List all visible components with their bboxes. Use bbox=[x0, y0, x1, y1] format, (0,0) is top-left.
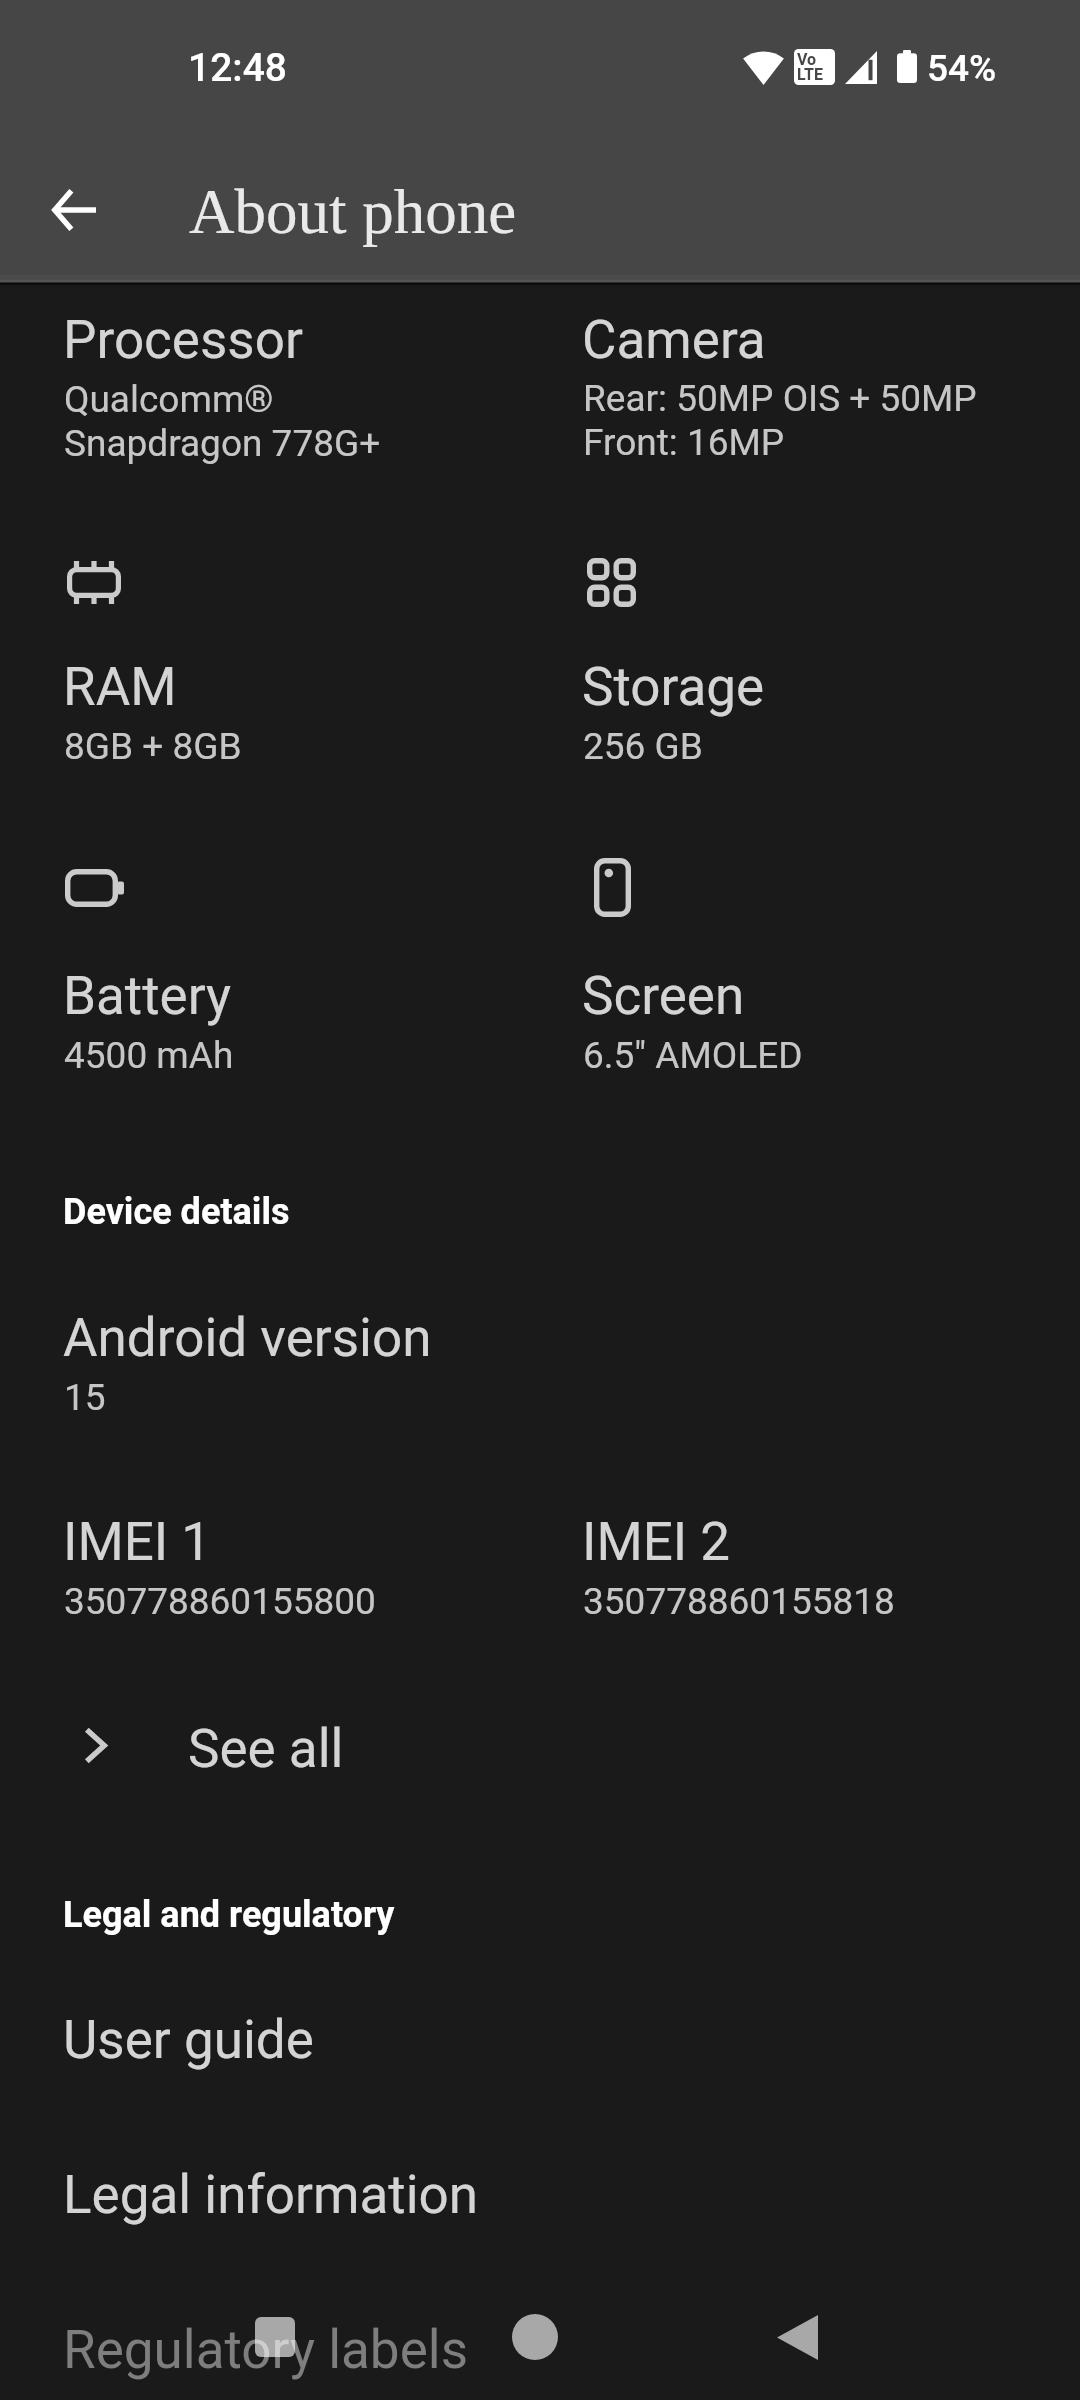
staticText: 6.5" AMOLED bbox=[583, 1034, 803, 1077]
button[interactable] bbox=[30, 1290, 520, 1440]
staticText: Android version bbox=[63, 1307, 432, 1369]
button[interactable] bbox=[30, 296, 520, 496]
button[interactable] bbox=[0, 1691, 1080, 1801]
staticText: Legal and regulatory bbox=[63, 1894, 395, 1936]
staticText: RAM bbox=[63, 656, 177, 718]
button[interactable] bbox=[30, 846, 520, 1088]
staticText: 350778860155800 bbox=[64, 1580, 376, 1623]
staticText: 4500 mAh bbox=[64, 1034, 234, 1077]
button[interactable]: Back bbox=[30, 166, 118, 254]
staticText: Legal information bbox=[63, 2164, 479, 2226]
staticText: Camera bbox=[582, 309, 766, 371]
button[interactable] bbox=[550, 846, 1050, 1088]
staticText: User guide bbox=[63, 2009, 314, 2071]
button[interactable] bbox=[30, 1496, 520, 1646]
staticText: IMEI 1 bbox=[63, 1511, 212, 1573]
staticText: See all bbox=[188, 1718, 344, 1780]
staticText: About phone bbox=[189, 177, 517, 247]
staticText: Rear: 50MP OIS + 50MP bbox=[583, 377, 977, 420]
button[interactable] bbox=[550, 1496, 1050, 1646]
staticText: 54% bbox=[927, 47, 997, 90]
staticText: Processor bbox=[63, 309, 303, 371]
staticText: 12:48 bbox=[188, 45, 288, 91]
staticText: Storage bbox=[582, 656, 765, 718]
staticText: IMEI 2 bbox=[582, 1511, 731, 1573]
staticText: LTE bbox=[797, 65, 823, 84]
button[interactable]: Back bbox=[707, 2267, 887, 2400]
staticText: Vo bbox=[797, 50, 817, 69]
staticText: Device details bbox=[63, 1191, 290, 1233]
staticText: Qualcomm® bbox=[64, 378, 274, 421]
button[interactable] bbox=[550, 540, 1050, 780]
staticText: Battery bbox=[63, 965, 232, 1027]
button[interactable]: Regulatory labels bbox=[0, 2290, 1080, 2400]
staticText: 350778860155818 bbox=[583, 1580, 895, 1623]
staticText: Front: 16MP bbox=[583, 421, 785, 464]
staticText: 8GB + 8GB bbox=[64, 725, 242, 768]
button[interactable] bbox=[550, 296, 1050, 496]
staticText: Regulatory labels bbox=[63, 2319, 468, 2381]
button[interactable]: User guide bbox=[0, 1980, 1080, 2090]
staticText: Screen bbox=[582, 965, 745, 1027]
button[interactable]: Legal information bbox=[0, 2135, 1080, 2245]
staticText: 15 bbox=[64, 1376, 106, 1419]
button[interactable] bbox=[30, 540, 520, 780]
button[interactable]: Home bbox=[445, 2267, 625, 2400]
staticText: Snapdragon 778G+ bbox=[64, 422, 381, 465]
staticText: 256 GB bbox=[583, 725, 703, 768]
button[interactable]: Recents bbox=[185, 2267, 365, 2400]
